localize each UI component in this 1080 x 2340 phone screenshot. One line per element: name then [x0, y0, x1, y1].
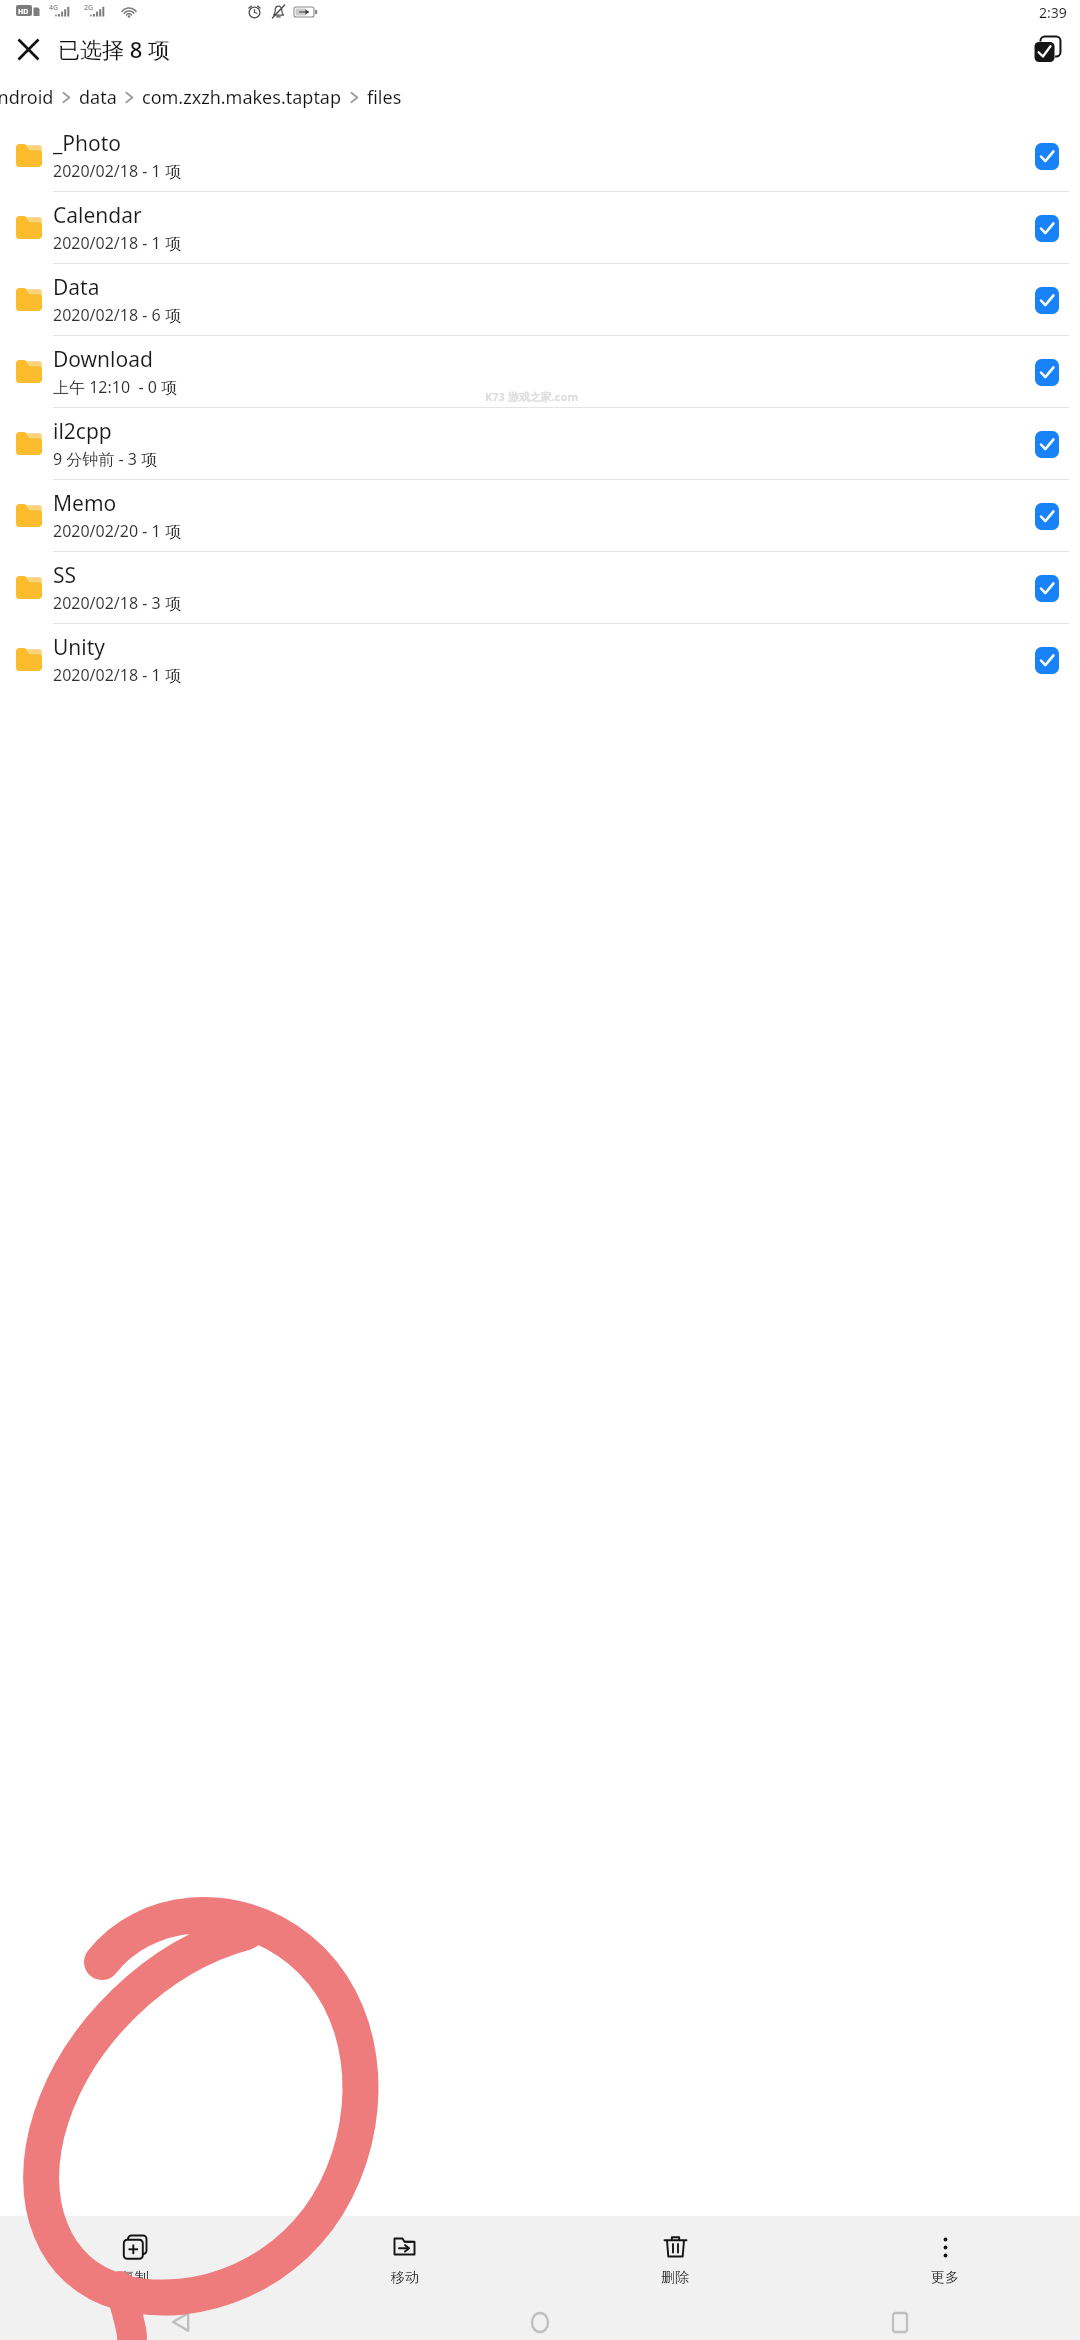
button[interactable]: Selected: [1029, 282, 1065, 318]
button[interactable]: 移动: [270, 2216, 540, 2304]
staticText: Data: [53, 273, 100, 302]
staticText: Calendar: [53, 201, 142, 230]
staticText: Android: [0, 85, 54, 110]
staticText: 已选择 8 项: [58, 34, 171, 64]
staticText: Memo: [53, 489, 117, 518]
button[interactable]: Selected: [1029, 642, 1065, 678]
staticText: data: [79, 85, 117, 110]
staticText: 上午 12:10 - 0 项: [53, 376, 178, 398]
button[interactable]: Selected: [1029, 570, 1065, 606]
button[interactable]: Download: [0, 336, 1080, 407]
button[interactable]: files: [367, 85, 402, 110]
staticText: 2020/02/18 - 3 项: [53, 592, 181, 614]
button[interactable]: Home: [360, 2304, 720, 2340]
button[interactable]: com.zxzh.makes.taptap: [142, 85, 342, 110]
button[interactable]: Select all: [1021, 24, 1073, 74]
button[interactable]: _Photo: [0, 120, 1080, 191]
staticText: K73 游戏之家.com: [485, 389, 579, 404]
staticText: 2020/02/18 - 6 项: [53, 304, 181, 326]
staticText: 4G: [49, 3, 59, 13]
staticText: 删除: [661, 2269, 689, 2287]
button[interactable]: data: [79, 85, 117, 110]
button[interactable]: Memo: [0, 480, 1080, 551]
button[interactable]: Data: [0, 264, 1080, 335]
staticText: 2:39: [1039, 3, 1067, 22]
staticText: HD: [18, 7, 29, 17]
button[interactable]: Selected: [1029, 354, 1065, 390]
button[interactable]: Selected: [1029, 498, 1065, 534]
staticText: 2020/02/18 - 1 项: [53, 232, 181, 254]
staticText: 2G: [84, 3, 94, 13]
staticText: 2020/02/18 - 1 项: [53, 664, 181, 686]
button[interactable]: 复制: [0, 2216, 270, 2304]
button[interactable]: SS: [0, 552, 1080, 623]
button[interactable]: Back: [0, 2304, 360, 2340]
button[interactable]: Calendar: [0, 192, 1080, 263]
staticText: _Photo: [53, 129, 121, 158]
button[interactable]: il2cpp: [0, 408, 1080, 479]
button[interactable]: Recents: [720, 2304, 1080, 2340]
staticText: SS: [53, 561, 77, 590]
staticText: 复制: [121, 2269, 149, 2287]
button[interactable]: Close selection: [2, 24, 54, 74]
button[interactable]: 删除: [540, 2216, 810, 2304]
staticText: Download: [53, 345, 153, 374]
staticText: 移动: [391, 2269, 419, 2287]
button[interactable]: 更多: [810, 2216, 1080, 2304]
button[interactable]: Selected: [1029, 138, 1065, 174]
button[interactable]: Selected: [1029, 210, 1065, 246]
button[interactable]: Selected: [1029, 426, 1065, 462]
staticText: 更多: [931, 2269, 959, 2287]
staticText: Unity: [53, 633, 106, 662]
staticText: il2cpp: [53, 417, 112, 446]
staticText: 2020/02/18 - 1 项: [53, 160, 181, 182]
staticText: files: [367, 85, 402, 110]
staticText: com.zxzh.makes.taptap: [142, 85, 342, 110]
button[interactable]: Unity: [0, 624, 1080, 695]
button[interactable]: Android: [0, 85, 54, 110]
staticText: 2020/02/20 - 1 项: [53, 520, 181, 542]
staticText: 9 分钟前 - 3 项: [53, 448, 158, 470]
